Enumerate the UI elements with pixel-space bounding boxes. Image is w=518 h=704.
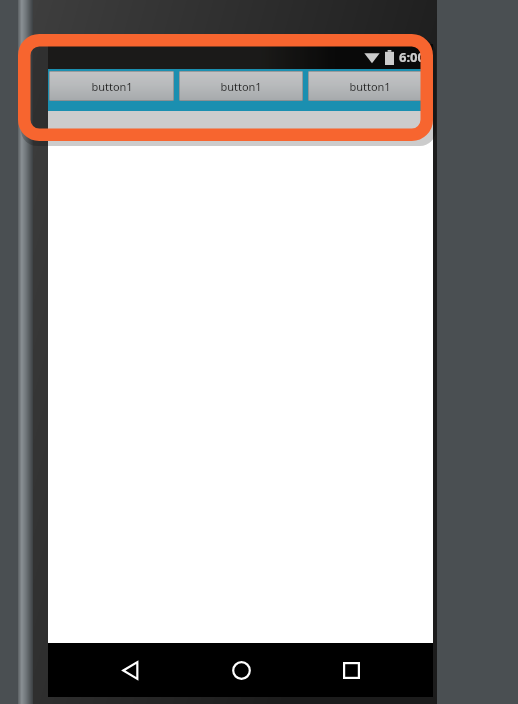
button[interactable]: button1 xyxy=(308,71,432,101)
staticText: button1 xyxy=(349,79,391,94)
button[interactable]: button1 xyxy=(49,71,174,101)
button[interactable]: Recent apps xyxy=(323,643,379,697)
staticText: button1 xyxy=(91,79,133,94)
button[interactable]: Back xyxy=(102,643,158,697)
staticText: button1 xyxy=(220,79,262,94)
button[interactable]: button1 xyxy=(179,71,303,101)
button[interactable]: Home xyxy=(213,643,269,697)
staticText: 6:00 xyxy=(399,48,425,66)
